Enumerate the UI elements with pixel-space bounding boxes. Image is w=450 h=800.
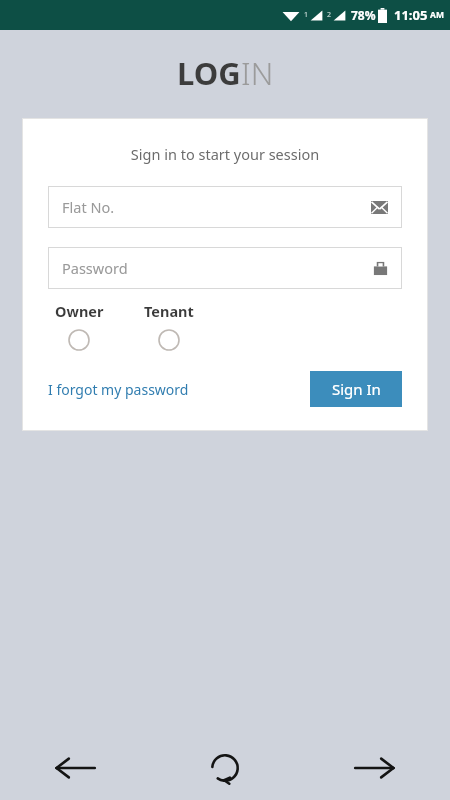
staticText: Sign in to start your session [22,144,428,164]
button[interactable]: Back [0,736,150,800]
button[interactable]: I forgot my password [48,380,189,399]
staticText: Flat No. [62,197,371,217]
button[interactable]: Reload [150,736,300,800]
button[interactable]: Tenant option [138,327,200,353]
staticText: AM [430,9,444,21]
button[interactable]: Flat No. [48,186,402,228]
staticText: Owner [55,301,104,321]
staticText: Password [62,258,373,278]
button[interactable]: Sign In [310,371,402,407]
staticText: LOG [177,52,241,94]
button[interactable]: Forward [300,736,450,800]
staticText: IN [241,52,274,94]
staticText: I forgot my password [48,380,189,399]
button[interactable]: Owner option [48,327,110,353]
staticText: 78% [351,7,376,23]
button[interactable]: Password [48,247,402,289]
staticText: Sign In [332,379,381,399]
staticText: 1 [304,10,309,20]
staticText: 2 [327,10,332,20]
staticText: 11:05 [394,6,428,24]
staticText: Tenant [144,301,194,321]
